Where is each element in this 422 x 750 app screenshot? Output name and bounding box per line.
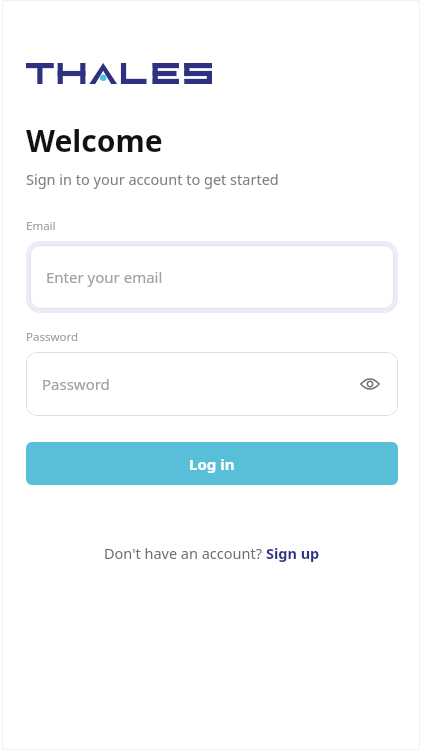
staticText: Email — [26, 218, 56, 234]
button[interactable]: Enter your email — [30, 245, 394, 309]
staticText: Enter your email — [46, 267, 163, 287]
staticText: Sign up — [266, 543, 320, 563]
staticText: Don't have an account? — [104, 543, 266, 563]
staticText: Log in — [189, 454, 235, 474]
button[interactable]: Sign up — [266, 543, 320, 563]
button[interactable]: Log in — [26, 442, 398, 485]
staticText: Sign in to your account to get started — [26, 169, 279, 189]
staticText: Password — [42, 374, 110, 394]
staticText: Password — [26, 329, 79, 345]
button[interactable]: Show password — [356, 370, 384, 398]
other: Thales logo — [26, 63, 212, 84]
button[interactable]: Password — [26, 352, 398, 416]
staticText: Welcome — [26, 120, 163, 161]
